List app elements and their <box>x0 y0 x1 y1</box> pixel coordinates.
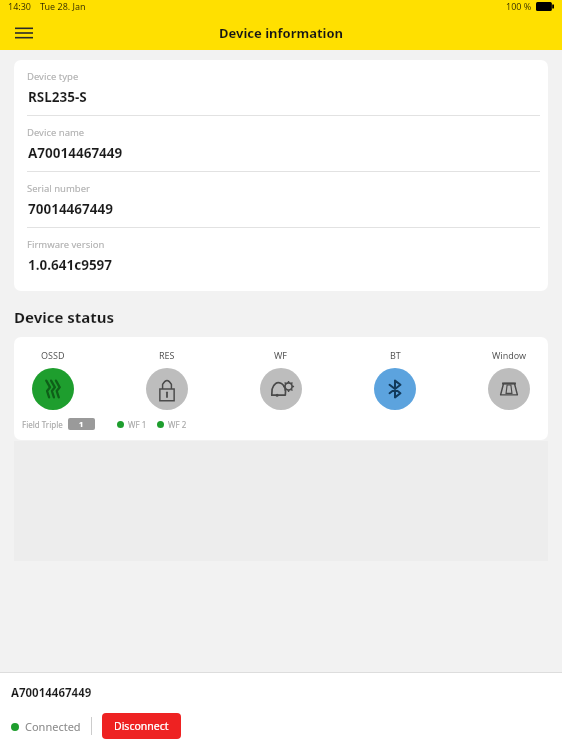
staticText: Device information <box>219 24 344 42</box>
staticText: Serial number <box>27 182 90 195</box>
button[interactable]: Disconnect <box>102 713 181 739</box>
staticText: Device type <box>27 70 79 83</box>
staticText: Disconnect <box>114 719 169 733</box>
button[interactable]: Connected <box>11 719 81 734</box>
staticText: Connected <box>25 719 81 734</box>
staticText: Device name <box>27 126 85 139</box>
staticText: OSSD <box>41 349 65 361</box>
button[interactable]: Window <box>480 349 538 410</box>
button[interactable]: Menu <box>8 17 40 49</box>
button[interactable]: OSSD <box>24 349 82 410</box>
staticText: 1 <box>79 419 84 429</box>
staticText: Device status <box>14 307 115 327</box>
staticText: 100 % <box>506 0 532 12</box>
button[interactable]: Serial number <box>22 172 540 228</box>
staticText: RES <box>159 349 175 361</box>
staticText: BT <box>390 349 401 361</box>
staticText: Firmware version <box>27 238 105 251</box>
staticText: A70014467449 <box>28 144 123 162</box>
staticText: Field Triple <box>22 419 63 430</box>
button[interactable]: Firmware version <box>22 228 540 283</box>
button[interactable]: BT <box>366 349 424 410</box>
staticText: WF 1 <box>128 419 147 430</box>
button[interactable]: WF <box>252 349 310 410</box>
button[interactable]: RES <box>138 349 196 410</box>
button[interactable]: Device name <box>22 116 540 172</box>
staticText: WF 2 <box>168 419 187 430</box>
staticText: WF <box>274 349 288 361</box>
staticText: RSL235-S <box>28 88 87 106</box>
staticText: Window <box>492 349 527 361</box>
staticText: 14:30 <box>8 0 32 12</box>
staticText: A70014467449 <box>11 685 92 701</box>
staticText: 70014467449 <box>28 200 113 218</box>
button[interactable]: Device type <box>22 60 540 116</box>
staticText: 1.0.641c9597 <box>28 256 113 274</box>
staticText: Tue 28. Jan <box>40 0 86 12</box>
